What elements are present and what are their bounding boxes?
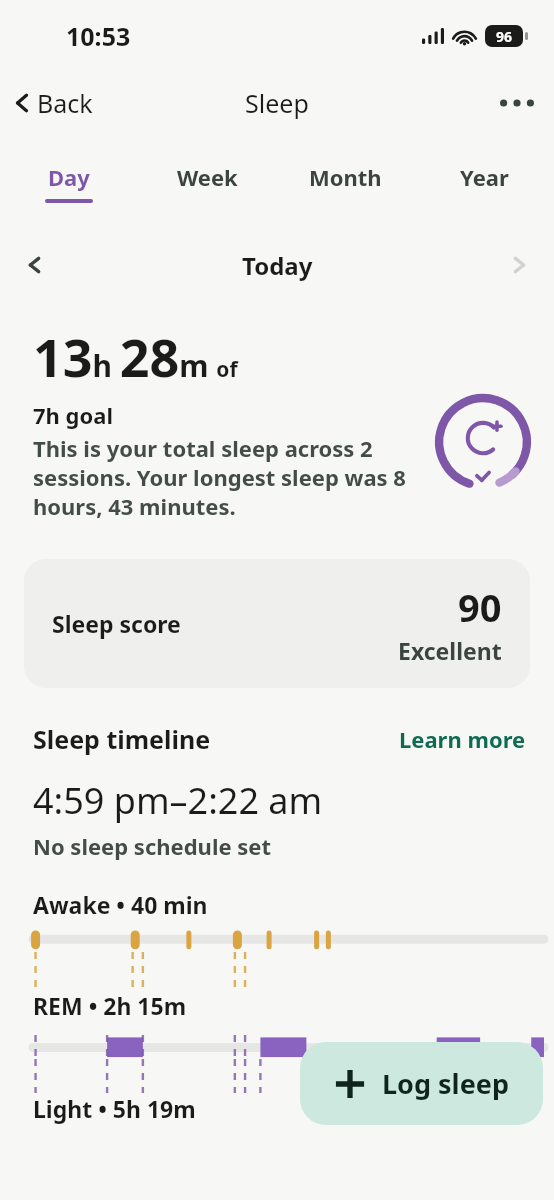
button[interactable]: Sleep score (24, 559, 530, 688)
staticText: Back (37, 86, 93, 120)
staticText: Sleep score (52, 608, 181, 639)
staticText: Year (460, 162, 509, 192)
staticText: This is your total sleep across 2 sessio… (33, 433, 426, 521)
button[interactable]: Back (0, 80, 105, 126)
staticText: Sleep (245, 86, 309, 120)
staticText: No sleep schedule set (33, 831, 272, 861)
button[interactable]: More options (480, 85, 554, 121)
button[interactable]: Day (0, 158, 138, 207)
staticText: 96 (496, 27, 513, 46)
staticText: Excellent (398, 635, 502, 666)
button[interactable]: Previous day (0, 244, 69, 286)
staticText: Learn more (399, 724, 526, 754)
button[interactable]: Week (138, 158, 276, 203)
button[interactable]: Year (415, 158, 554, 203)
staticText: Month (309, 162, 382, 192)
button[interactable]: Log sleep (300, 1042, 543, 1125)
staticText: Today (242, 249, 313, 282)
button[interactable]: Month (276, 158, 415, 203)
staticText: Light • 5h 19m (33, 1093, 196, 1124)
staticText: 90 (458, 581, 502, 633)
staticText: Day (48, 162, 90, 192)
button[interactable]: Learn more (395, 720, 530, 758)
staticText: Sleep timeline (33, 722, 211, 756)
staticText: 13h 28m of (33, 321, 238, 392)
staticText: REM • 2h 15m (33, 990, 187, 1021)
staticText: 4:59 pm–2:22 am (33, 776, 323, 825)
staticText: 10:53 (66, 19, 131, 53)
staticText: 7h goal (33, 400, 113, 430)
staticText: Log sleep (382, 1065, 509, 1102)
staticText: Week (177, 162, 238, 192)
button[interactable]: Next day (485, 244, 554, 286)
staticText: Awake • 40 min (33, 889, 208, 920)
